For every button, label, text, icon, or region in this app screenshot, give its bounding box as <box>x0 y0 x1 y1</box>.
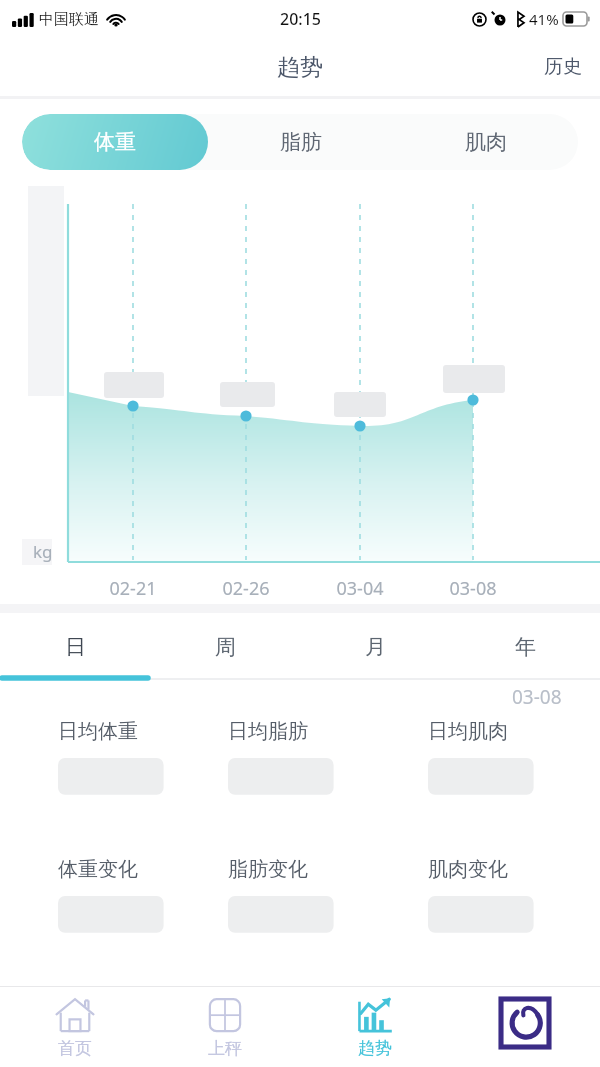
button[interactable]: 年 <box>450 613 600 681</box>
staticText: 日均脂肪 <box>228 719 308 744</box>
staticText: 脂肪 <box>280 129 322 155</box>
button[interactable]: 肌肉变化 <box>400 851 600 971</box>
staticText: 03-08 <box>439 576 507 601</box>
button[interactable]: Brand stamp <box>450 987 600 1067</box>
staticText: 月 <box>365 634 386 660</box>
staticText: 02-26 <box>212 576 280 601</box>
staticText: 上秤 <box>208 1038 242 1059</box>
staticText: 03-08 <box>512 684 562 710</box>
staticText: 脂肪变化 <box>228 857 308 882</box>
button[interactable]: 脂肪 <box>208 114 393 170</box>
button[interactable]: 日均体重 <box>0 713 200 833</box>
staticText: 肌肉 <box>465 129 507 155</box>
button[interactable]: 首页 <box>0 987 150 1067</box>
staticText: 日均肌肉 <box>428 719 508 744</box>
staticText: 03-04 <box>326 576 394 601</box>
staticText: 年 <box>515 634 536 660</box>
staticText: 日均体重 <box>58 719 138 744</box>
button[interactable]: 脂肪变化 <box>200 851 400 971</box>
button[interactable]: 历史 <box>526 45 600 89</box>
staticText: 41% <box>529 9 559 29</box>
button[interactable]: 周 <box>150 613 300 681</box>
button[interactable]: 体重 <box>22 114 208 170</box>
button[interactable]: 肌肉 <box>393 114 578 170</box>
staticText: 历史 <box>544 55 582 79</box>
button[interactable]: 月 <box>300 613 450 681</box>
button[interactable]: 趋势 <box>300 987 450 1067</box>
staticText: 体重变化 <box>58 857 138 882</box>
staticText: 02-21 <box>99 576 167 601</box>
button[interactable]: 上秤 <box>150 987 300 1067</box>
button[interactable]: 日均脂肪 <box>200 713 400 833</box>
button[interactable]: 体重变化 <box>0 851 200 971</box>
staticText: 肌肉变化 <box>428 857 508 882</box>
staticText: 周 <box>215 634 236 660</box>
staticText: 体重 <box>94 129 136 155</box>
staticText: 趋势 <box>277 53 323 82</box>
staticText: 日 <box>65 634 86 660</box>
staticText: 首页 <box>58 1038 92 1059</box>
staticText: 中国联通 <box>39 10 99 29</box>
staticText: 20:15 <box>280 8 321 30</box>
staticText: kg <box>33 540 53 563</box>
staticText: 趋势 <box>358 1038 392 1059</box>
button[interactable]: 日 <box>0 613 150 681</box>
button[interactable]: 日均肌肉 <box>400 713 600 833</box>
